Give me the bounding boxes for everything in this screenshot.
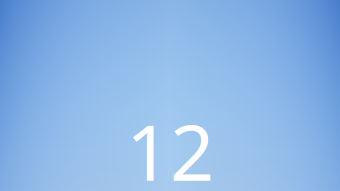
- staticText: 12: [126, 99, 214, 191]
